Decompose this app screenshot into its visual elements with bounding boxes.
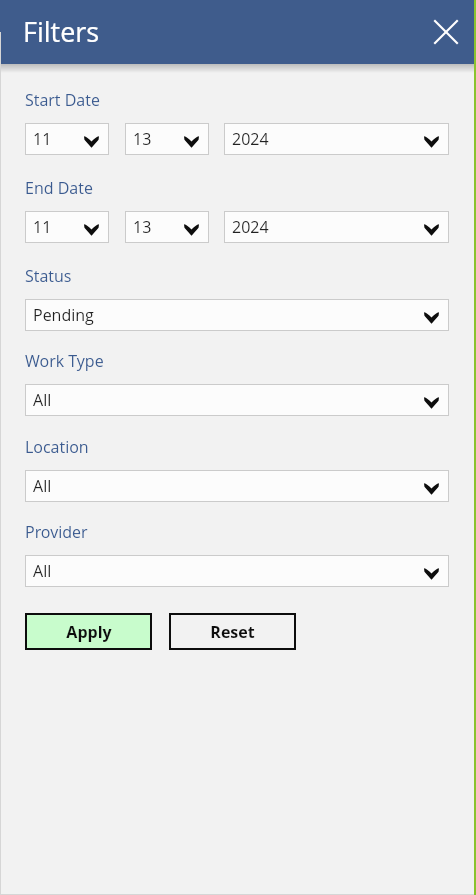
staticText: Status	[25, 265, 72, 287]
button[interactable]: All	[25, 555, 449, 587]
staticText: All	[33, 560, 52, 582]
staticText: Reset	[210, 621, 255, 643]
staticText: 13	[133, 128, 152, 150]
staticText: Pending	[33, 304, 94, 326]
staticText: End Date	[25, 177, 93, 199]
button[interactable]: 11	[25, 123, 109, 155]
button[interactable]: Close	[426, 12, 466, 52]
staticText: 11	[33, 128, 52, 150]
button[interactable]: All	[25, 470, 449, 502]
staticText: 13	[133, 216, 152, 238]
staticText: 2024	[232, 216, 269, 238]
staticText: All	[33, 389, 52, 411]
button[interactable]: 2024	[224, 211, 449, 243]
button[interactable]: Apply	[25, 613, 152, 650]
staticText: Filters	[23, 13, 100, 50]
staticText: 11	[33, 216, 52, 238]
button[interactable]: 13	[125, 123, 209, 155]
button[interactable]: 11	[25, 211, 109, 243]
staticText: Work Type	[25, 350, 104, 372]
button[interactable]: All	[25, 384, 449, 416]
button[interactable]: 13	[125, 211, 209, 243]
staticText: Start Date	[25, 89, 100, 111]
staticText: Apply	[66, 621, 112, 643]
staticText: Location	[25, 436, 89, 458]
staticText: Provider	[25, 521, 88, 543]
button[interactable]: 2024	[224, 123, 449, 155]
button[interactable]: Pending	[25, 299, 449, 331]
staticText: 2024	[232, 128, 269, 150]
button[interactable]: Reset	[169, 613, 296, 650]
staticText: All	[33, 475, 52, 497]
